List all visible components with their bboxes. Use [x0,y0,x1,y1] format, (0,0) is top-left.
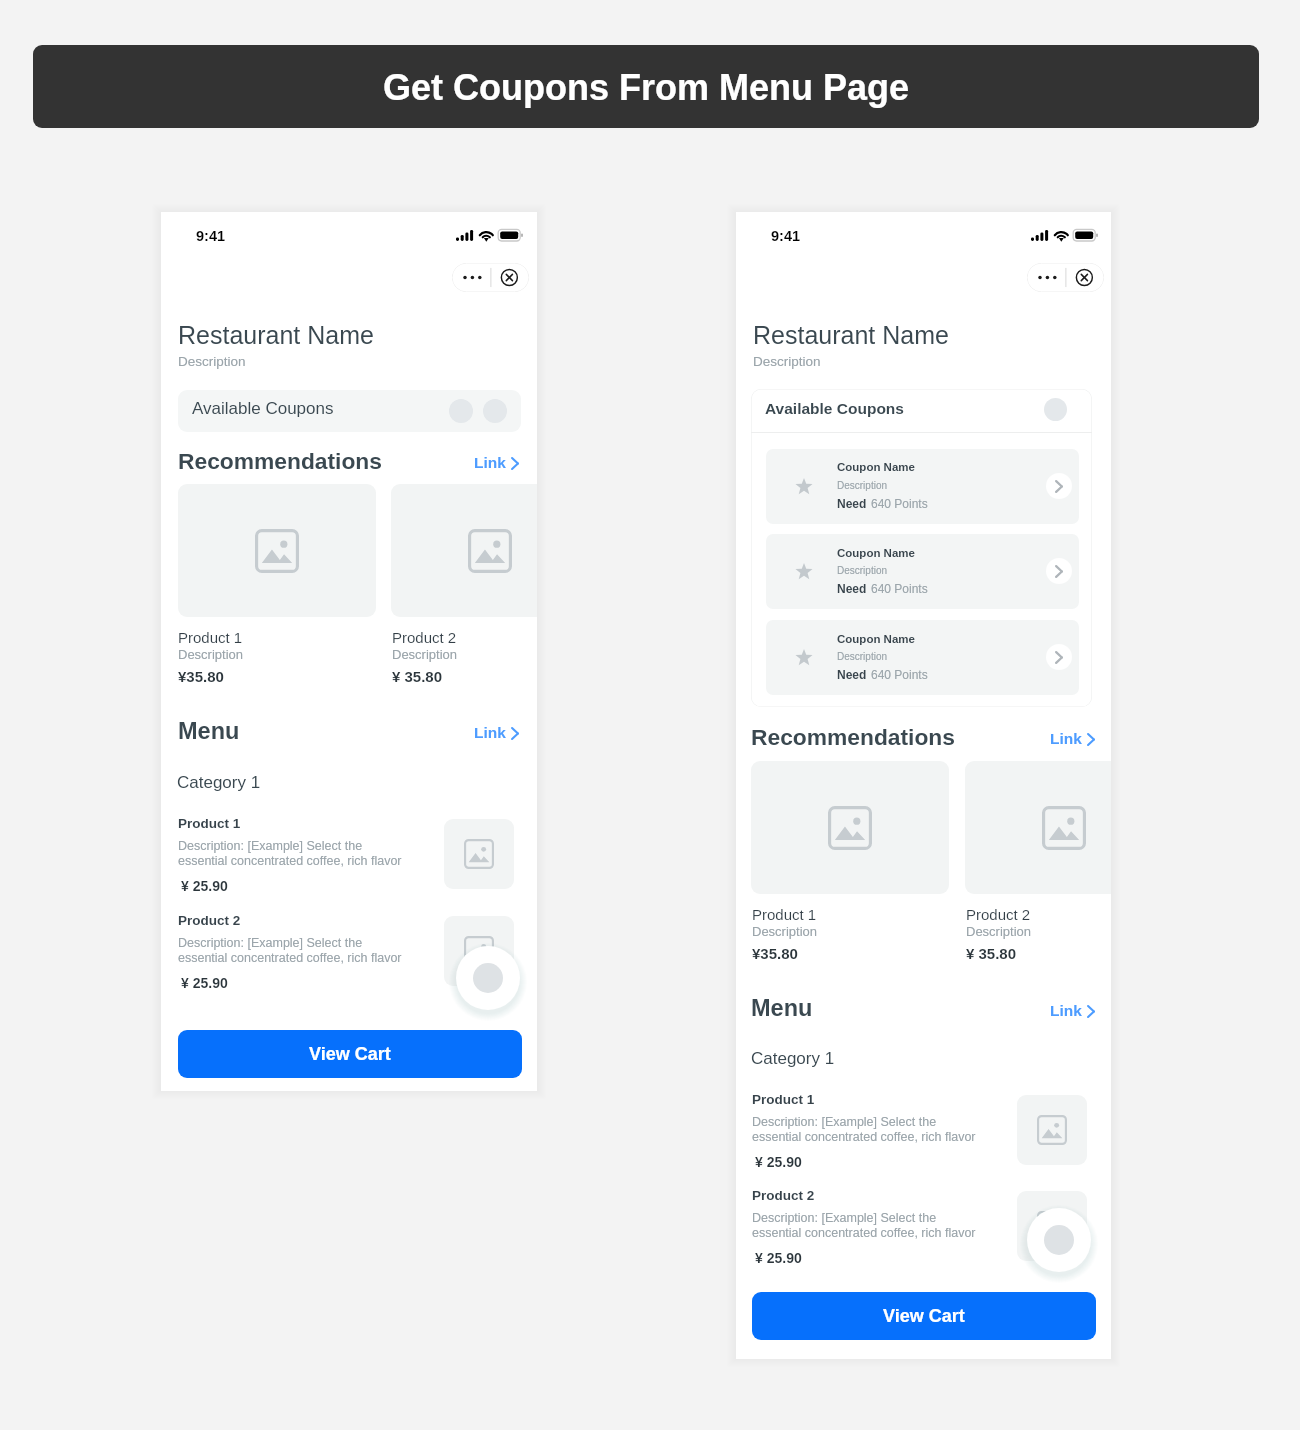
button[interactable]: Assistant button [1027,1208,1091,1272]
staticText: 640 Points [871,497,928,510]
staticText: 9:41 [196,228,226,244]
button[interactable]: Link [1047,1001,1095,1021]
staticText: Recommendations [178,448,382,473]
staticText: Restaurant Name [753,321,949,349]
staticText: Product 2 [178,913,241,928]
button[interactable]: Get Coupons From Menu Page [33,45,1259,128]
button[interactable]: Available Coupons [178,390,521,432]
button[interactable]: Collapse coupons [1044,398,1067,421]
staticText: Available Coupons [765,400,904,417]
button[interactable]: Link [1047,729,1095,749]
button[interactable]: Open coupon details [1046,558,1072,584]
staticText: Link [474,724,506,741]
staticText: Need [837,668,867,681]
staticText: Product 2 [752,1188,815,1203]
staticText: Restaurant Name [178,321,374,349]
staticText: Description [392,647,458,662]
staticText: Category 1 [177,773,261,792]
staticText: 640 Points [871,582,928,595]
button[interactable]: Product 1 menu item [178,818,514,892]
staticText: Description: [Example] Select the [752,1211,937,1225]
button[interactable]: Assistant button [456,946,520,1010]
staticText: Product 1 [178,629,243,646]
staticText: ¥ 25.90 [181,975,228,991]
button[interactable]: Previous coupon [449,399,473,423]
staticText: essential concentrated coffee, rich flav… [752,1130,976,1144]
staticText: Description [837,480,888,491]
staticText: View Cart [309,1044,391,1064]
staticText: ¥35.80 [178,668,224,685]
staticText: essential concentrated coffee, rich flav… [178,951,402,965]
button[interactable]: Product 1 image [178,484,376,617]
staticText: Link [474,454,506,471]
staticText: essential concentrated coffee, rich flav… [752,1226,976,1240]
staticText: Coupon Name [837,547,915,560]
staticText: ¥ 35.80 [392,668,443,685]
staticText: Product 1 [752,1092,815,1107]
button[interactable]: Next coupon [483,399,507,423]
staticText: Description [837,651,888,662]
staticText: Get Coupons From Menu Page [383,67,910,107]
button[interactable]: Open coupon details [1046,473,1072,499]
staticText: Coupon Name [837,461,915,474]
button[interactable]: More options and close [452,263,529,292]
staticText: Description [966,924,1032,939]
staticText: Need [837,582,867,595]
staticText: ¥ 35.80 [966,945,1017,962]
button[interactable]: Product 1 image [751,761,949,894]
button[interactable]: Product 2 image [391,484,537,617]
staticText: Product 2 [966,906,1031,923]
button[interactable]: Coupon Name, need 640 points [766,449,1079,524]
staticText: Description: [Example] Select the [178,839,363,853]
staticText: Description: [Example] Select the [178,936,363,950]
staticText: Description [753,354,821,369]
staticText: 9:41 [771,228,801,244]
button[interactable]: Product 2 menu item [752,1190,1087,1264]
staticText: Available Coupons [192,399,334,418]
staticText: Category 1 [751,1049,835,1068]
staticText: Need [837,497,867,510]
staticText: Menu [751,995,813,1021]
staticText: essential concentrated coffee, rich flav… [178,854,402,868]
staticText: View Cart [883,1306,965,1326]
staticText: Description: [Example] Select the [752,1115,937,1129]
staticText: 640 Points [871,668,928,681]
staticText: Product 1 [178,816,241,831]
staticText: Description [837,565,888,576]
staticText: Coupon Name [837,633,915,646]
button[interactable]: View Cart [752,1292,1096,1340]
button[interactable]: Open coupon details [1046,644,1072,670]
staticText: Link [1050,1002,1082,1019]
button[interactable]: Coupon Name, need 640 points [766,620,1079,695]
button[interactable]: Available Coupons [751,390,1091,433]
staticText: Description [178,354,246,369]
button[interactable]: Link [471,453,519,473]
staticText: Recommendations [751,724,955,749]
staticText: Description [752,924,818,939]
staticText: ¥ 25.90 [755,1154,802,1170]
button[interactable]: Product 2 menu item [178,915,514,989]
staticText: Menu [178,718,240,744]
button[interactable]: Link [471,724,519,744]
staticText: Product 2 [392,629,457,646]
staticText: ¥ 25.90 [181,878,228,894]
button[interactable]: Product 2 image [965,761,1111,894]
staticText: Product 1 [752,906,817,923]
button[interactable]: Coupon Name, need 640 points [766,534,1079,609]
button[interactable]: Product 1 menu item [752,1094,1087,1168]
button[interactable]: More options and close [1027,263,1104,292]
staticText: Link [1050,730,1082,747]
staticText: ¥35.80 [752,945,798,962]
staticText: ¥ 25.90 [755,1250,802,1266]
staticText: Description [178,647,244,662]
button[interactable]: View Cart [178,1030,522,1078]
